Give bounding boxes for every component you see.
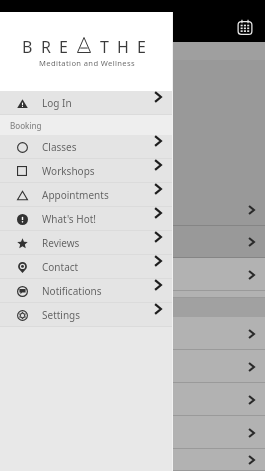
- button[interactable]: [0, 383, 265, 416]
- staticText: Meditation and Wellness: [39, 58, 136, 68]
- staticText: Reviews: [42, 236, 80, 250]
- button[interactable]: [0, 317, 265, 350]
- staticText: B: [22, 36, 33, 58]
- button[interactable]: What's Hot!: [0, 207, 173, 231]
- button[interactable]: [0, 350, 265, 383]
- button[interactable]: [0, 291, 265, 298]
- button[interactable]: [0, 193, 265, 226]
- staticText: H: [117, 36, 129, 58]
- staticText: Log In: [42, 96, 72, 110]
- button[interactable]: Classes: [0, 135, 173, 159]
- button[interactable]: Reviews: [0, 231, 173, 255]
- staticText: Notifications: [42, 284, 102, 298]
- staticText: Contact: [42, 260, 79, 274]
- staticText: R: [41, 36, 51, 58]
- staticText: Classes: [42, 140, 77, 154]
- button[interactable]: Notifications: [0, 279, 173, 303]
- button[interactable]: Log In: [0, 91, 173, 115]
- staticText: E: [59, 36, 68, 58]
- button[interactable]: Settings: [0, 303, 173, 327]
- staticText: T: [100, 36, 109, 58]
- staticText: Settings: [42, 308, 81, 322]
- button[interactable]: [0, 258, 265, 291]
- button[interactable]: Appointments: [0, 183, 173, 207]
- button[interactable]: Workshops: [0, 159, 173, 183]
- button[interactable]: [0, 416, 265, 449]
- staticText: E: [137, 36, 146, 58]
- button[interactable]: [0, 226, 265, 258]
- staticText: What's Hot!: [42, 212, 96, 226]
- button[interactable]: [0, 449, 265, 471]
- staticText: Booking: [10, 120, 42, 131]
- button[interactable]: Contact: [0, 255, 173, 279]
- staticText: Appointments: [42, 188, 109, 202]
- staticText: Workshops: [42, 164, 95, 178]
- button[interactable]: Calendar: [233, 15, 257, 39]
